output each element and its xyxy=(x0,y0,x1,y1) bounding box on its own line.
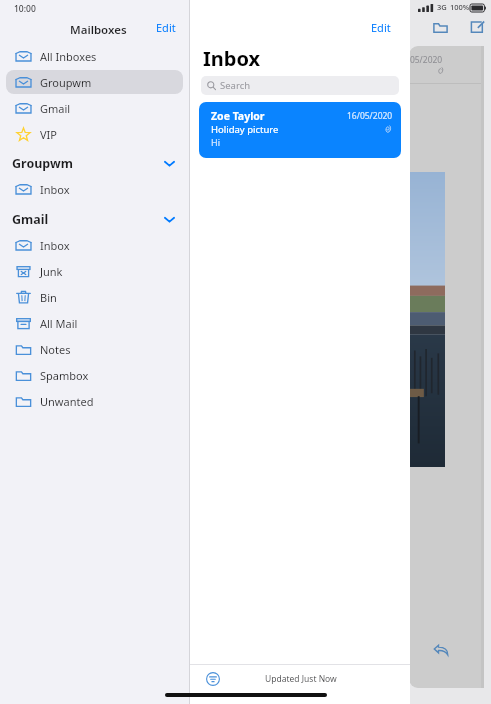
button[interactable]: Zoe Taylor xyxy=(199,102,401,158)
staticText: Groupwm xyxy=(12,155,73,172)
staticText: All Inboxes xyxy=(40,49,97,64)
button[interactable]: Inbox xyxy=(6,177,183,201)
other: Collapse Groupwm xyxy=(164,160,175,167)
button[interactable]: Filter xyxy=(202,668,224,690)
staticText: VIP xyxy=(40,127,57,142)
button[interactable]: Unwanted xyxy=(6,389,183,413)
button[interactable]: Gmail xyxy=(6,96,183,120)
button[interactable]: Compose xyxy=(466,16,488,38)
button[interactable]: Bin xyxy=(6,285,183,309)
button[interactable]: Spambox xyxy=(6,363,183,387)
staticText: 100% xyxy=(450,2,470,12)
staticText: 10:00 xyxy=(14,3,36,15)
staticText: Notes xyxy=(40,342,71,357)
staticText: Search xyxy=(220,79,251,92)
staticText: Groupwm xyxy=(40,75,92,90)
button[interactable]: Edit xyxy=(150,18,182,36)
other: Attachment xyxy=(384,124,392,134)
button[interactable]: Reply xyxy=(430,638,452,660)
staticText: Spambox xyxy=(40,368,89,383)
button[interactable]: Gmail xyxy=(6,208,183,230)
button[interactable]: Inbox xyxy=(6,233,183,257)
staticText: Bin xyxy=(40,290,57,305)
staticText: Hi xyxy=(211,136,220,148)
staticText: Gmail xyxy=(40,101,71,116)
staticText: All Mail xyxy=(40,316,78,331)
button[interactable]: VIP xyxy=(6,122,183,146)
staticText: 16/05/2020 xyxy=(409,54,443,66)
staticText: Edit xyxy=(371,20,391,35)
staticText: Edit xyxy=(156,20,176,35)
button[interactable]: Notes xyxy=(6,337,183,361)
staticText: Inbox xyxy=(40,182,70,197)
button[interactable]: Search xyxy=(201,76,399,95)
staticText: Gmail xyxy=(12,211,49,228)
staticText: Holiday picture xyxy=(211,123,279,136)
staticText: Updated Just Now xyxy=(265,673,337,685)
other: Collapse Gmail xyxy=(164,216,175,223)
staticText: 3G xyxy=(437,2,447,12)
staticText: Zoe Taylor xyxy=(211,109,265,123)
button[interactable]: All Inboxes xyxy=(6,44,183,68)
staticText: Inbox xyxy=(203,45,261,72)
button[interactable]: Groupwm xyxy=(6,152,183,174)
button[interactable]: Edit xyxy=(365,18,397,36)
staticText: Junk xyxy=(40,264,63,279)
button[interactable]: Junk xyxy=(6,259,183,283)
button[interactable]: Move to folder xyxy=(429,16,451,38)
button[interactable]: Groupwm xyxy=(6,70,183,94)
button[interactable]: All Mail xyxy=(6,311,183,335)
staticText: Unwanted xyxy=(40,394,94,409)
staticText: 16/05/2020 xyxy=(347,110,393,122)
staticText: Mailboxes xyxy=(70,22,127,38)
staticText: Inbox xyxy=(40,238,70,253)
